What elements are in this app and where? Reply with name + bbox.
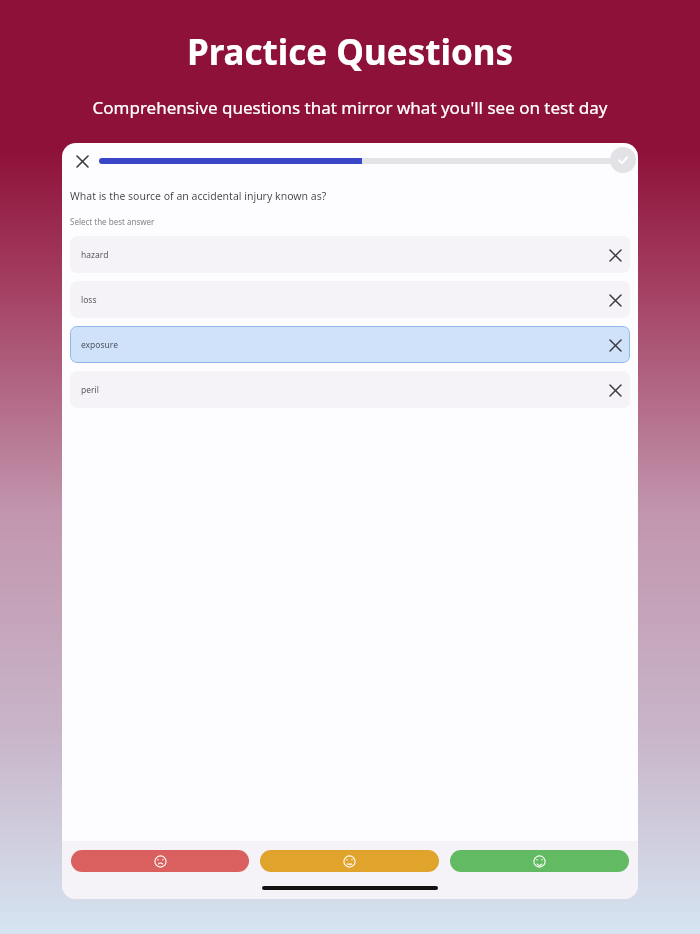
button[interactable]: peril: [70, 371, 630, 408]
staticText: What is the source of an accidental inju…: [70, 189, 327, 203]
staticText: Comprehensive questions that mirror what…: [16, 96, 684, 119]
button[interactable]: Close: [71, 150, 93, 172]
staticText: Select the best answer: [70, 216, 155, 227]
staticText: Practice Questions: [0, 28, 700, 76]
button[interactable]: Hard: [71, 850, 249, 872]
button[interactable]: exposure: [70, 326, 630, 363]
staticText: hazard: [81, 249, 603, 261]
button[interactable]: Easy: [450, 850, 629, 872]
button[interactable]: Mark complete: [610, 147, 636, 173]
staticText: exposure: [81, 339, 603, 351]
staticText: peril: [81, 384, 603, 396]
button[interactable]: hazard: [70, 236, 630, 273]
button[interactable]: Medium: [260, 850, 439, 872]
staticText: loss: [81, 294, 603, 306]
button[interactable]: loss: [70, 281, 630, 318]
